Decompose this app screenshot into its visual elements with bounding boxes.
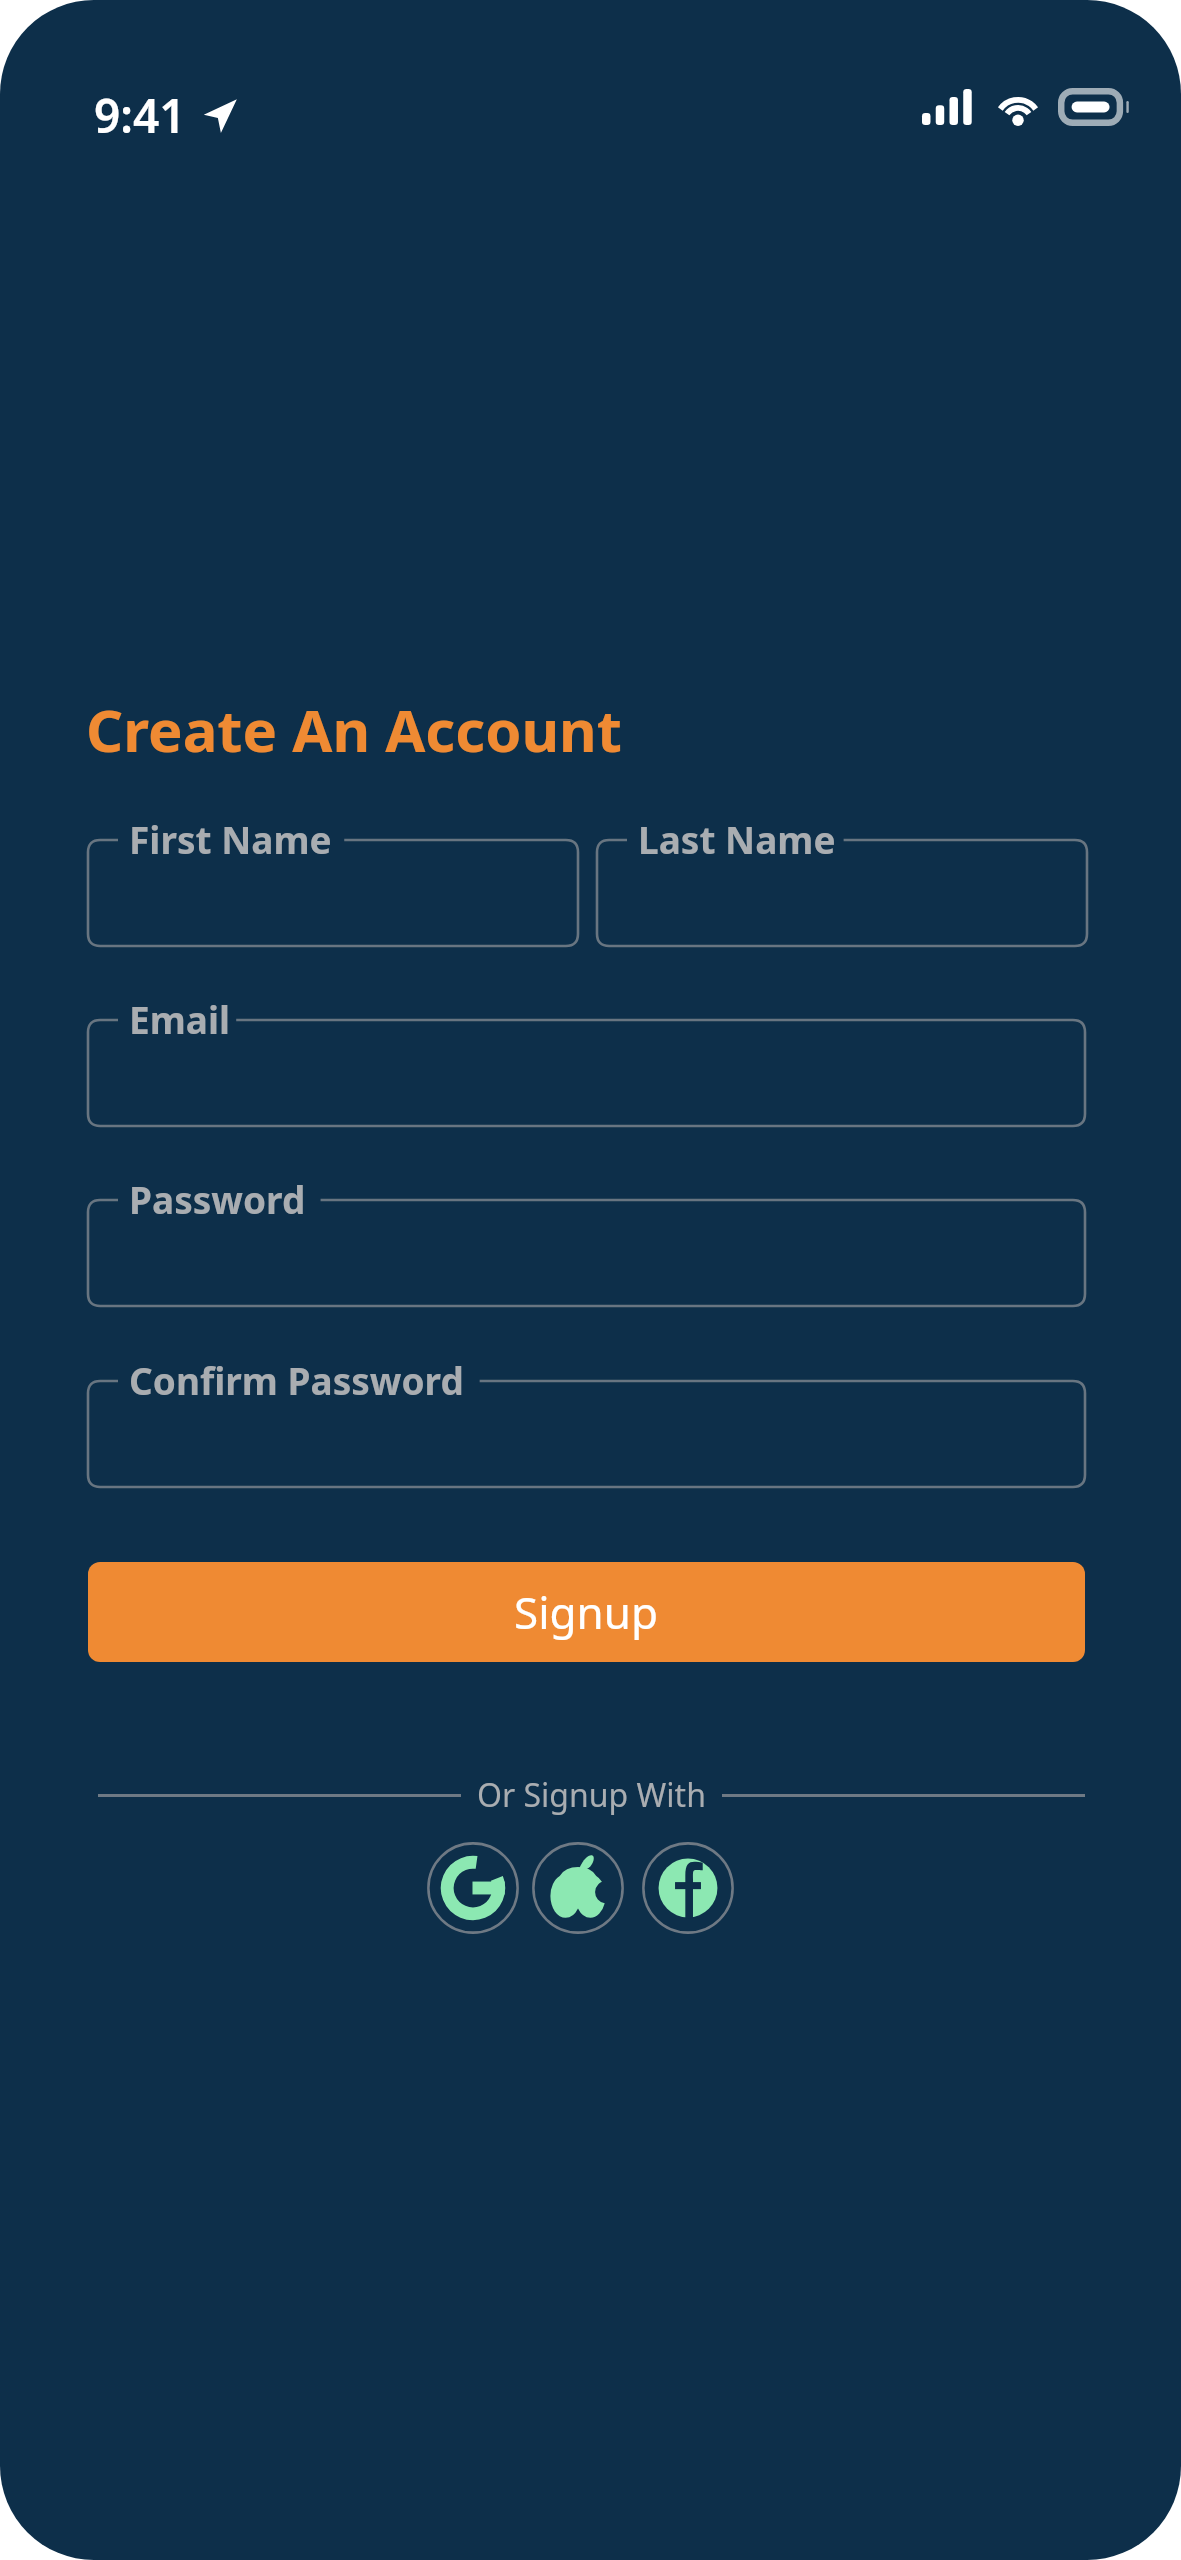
button[interactable]: Email bbox=[88, 1020, 1085, 1126]
staticText: Email bbox=[129, 994, 231, 1044]
button[interactable]: First Name bbox=[88, 840, 578, 946]
staticText: First Name bbox=[129, 814, 332, 864]
button[interactable]: Signup bbox=[88, 1562, 1085, 1662]
button[interactable]: Sign up with Google bbox=[427, 1842, 519, 1934]
staticText: Password bbox=[129, 1174, 306, 1224]
staticText: Create An Account bbox=[86, 690, 622, 769]
button[interactable]: Last Name bbox=[597, 840, 1087, 946]
button[interactable]: Sign up with Facebook bbox=[642, 1842, 734, 1934]
staticText: Last Name bbox=[638, 814, 836, 864]
staticText: 9:41 bbox=[94, 84, 186, 147]
button[interactable]: Confirm Password bbox=[88, 1381, 1085, 1487]
staticText: Or Signup With bbox=[477, 1773, 706, 1817]
staticText: Confirm Password bbox=[129, 1355, 464, 1405]
staticText: Signup bbox=[514, 1582, 659, 1642]
button[interactable]: Sign up with Apple bbox=[532, 1842, 624, 1934]
button[interactable]: Password bbox=[88, 1200, 1085, 1306]
